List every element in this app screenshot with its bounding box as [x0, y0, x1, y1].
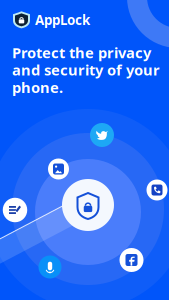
button[interactable]: Facebook [119, 248, 143, 272]
staticText: Protect the privacy [12, 43, 151, 62]
button[interactable]: Phone [146, 179, 167, 200]
staticText: phone. [12, 78, 63, 97]
button[interactable]: Voice recorder [38, 255, 61, 278]
button[interactable]: Photos [48, 158, 69, 179]
staticText: and security of your [12, 60, 160, 80]
staticText: AppLock [35, 11, 90, 29]
button[interactable]: Twitter [90, 123, 114, 147]
button[interactable]: Notes [3, 198, 27, 222]
